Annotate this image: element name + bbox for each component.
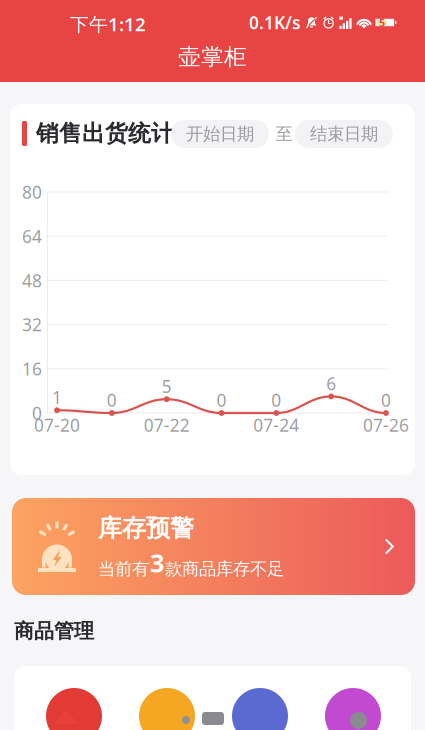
button[interactable]: Recent apps — [0, 706, 224, 725]
staticText: 3 — [150, 546, 164, 579]
staticText: 07-22 — [144, 413, 190, 436]
staticText: 至 — [275, 123, 292, 145]
staticText: 1 — [52, 386, 62, 409]
staticText: 32 — [22, 313, 42, 336]
staticText: 销售出货统计 — [36, 120, 174, 147]
button[interactable]: Back — [0, 706, 78, 724]
staticText: 07-26 — [363, 413, 409, 436]
staticText: 07-20 — [34, 413, 80, 436]
staticText: 商品管理 — [14, 619, 94, 643]
staticText: 库存预警 — [98, 513, 194, 543]
staticText: 80 — [22, 180, 42, 203]
staticText: 6 — [326, 372, 336, 395]
staticText: 0 — [271, 388, 281, 411]
button[interactable]: 商品列表 — [14, 666, 102, 730]
button[interactable]: 开始日期 — [171, 120, 269, 148]
staticText: 16 — [22, 357, 42, 380]
button[interactable]: 结束日期 — [295, 120, 393, 148]
staticText: 5 — [379, 15, 385, 30]
button[interactable]: Home — [0, 706, 190, 724]
staticText: 0 — [107, 388, 117, 411]
staticText: 5 — [162, 375, 172, 398]
button[interactable]: 商品上架 — [14, 666, 381, 730]
button[interactable]: 分类管理 — [14, 666, 195, 730]
staticText: 结束日期 — [310, 123, 378, 145]
button[interactable]: 库存管理 — [14, 666, 288, 730]
button[interactable]: 库存预警 — [12, 498, 415, 595]
staticText: 0 — [216, 388, 226, 411]
staticText: 07-24 — [253, 413, 299, 436]
staticText: 下午1:12 — [70, 12, 146, 36]
staticText: 当前有 — [98, 558, 149, 580]
staticText: 48 — [22, 269, 42, 292]
staticText: 壶掌柜 — [178, 43, 247, 71]
staticText: 开始日期 — [186, 123, 254, 145]
staticText: 0 — [381, 388, 391, 411]
staticText: 64 — [22, 225, 42, 248]
staticText: 款商品库存不足 — [165, 558, 284, 580]
staticText: 0.1K/s — [249, 11, 301, 34]
staticText: 0 — [32, 401, 42, 424]
